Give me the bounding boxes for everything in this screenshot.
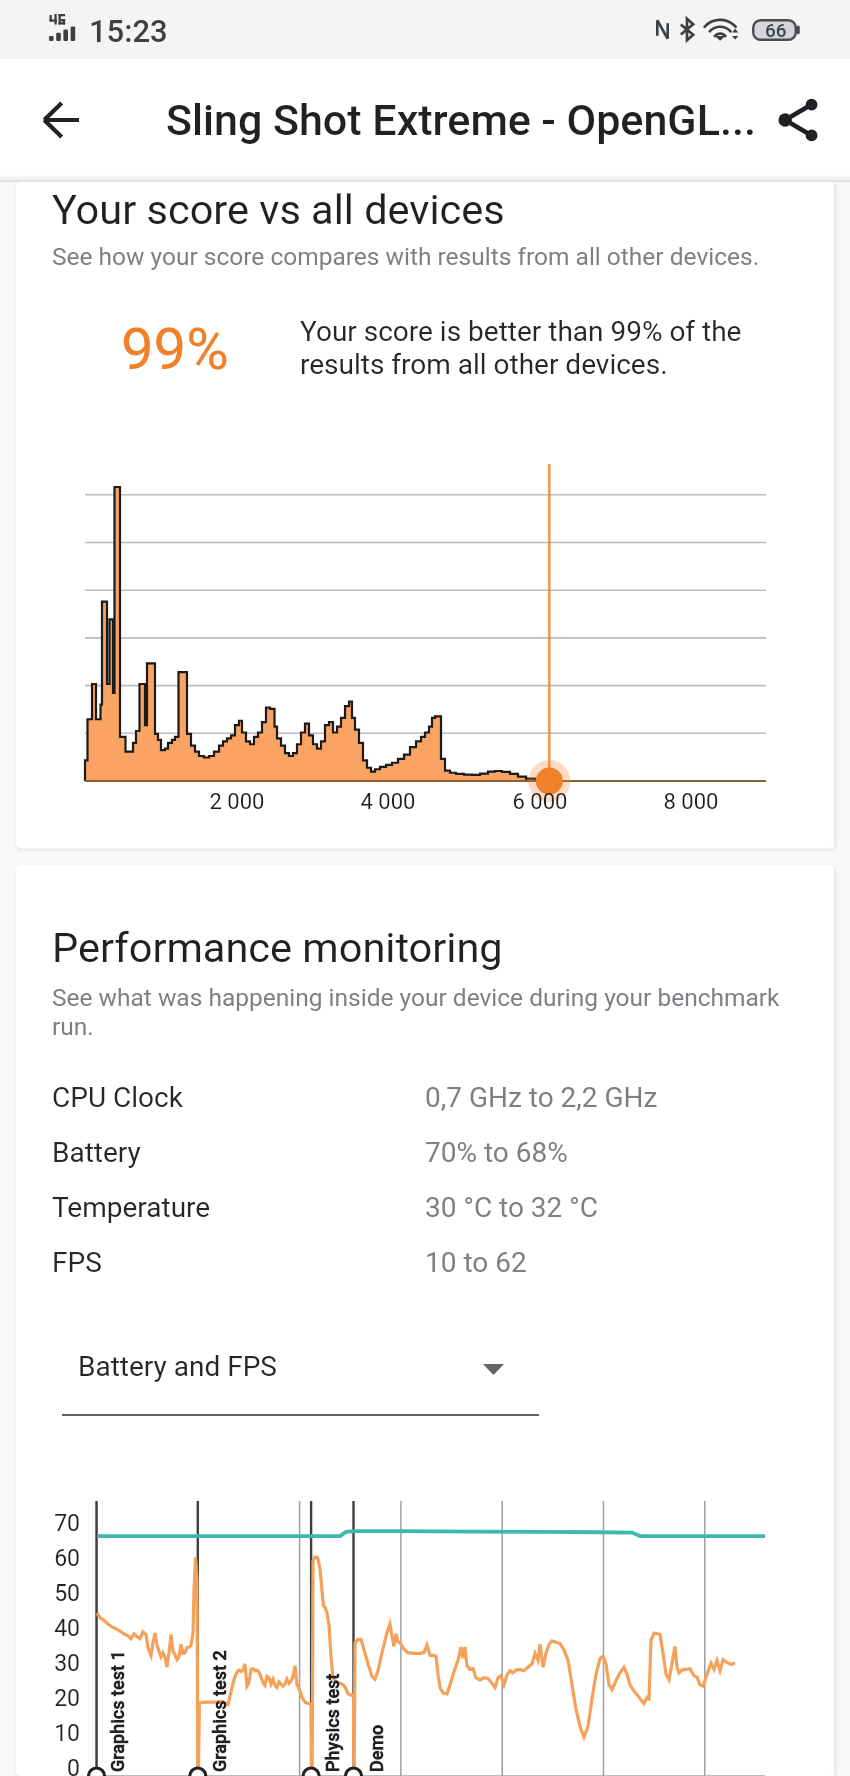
- staticText: 66: [765, 19, 787, 41]
- staticText: Sling Shot Extreme - OpenGL...: [166, 95, 756, 145]
- staticText: Graphics test 2: [209, 1650, 230, 1772]
- staticText: 70% to 68%: [425, 1136, 568, 1169]
- staticText: Graphics test 1: [107, 1650, 128, 1772]
- staticText: 70: [16, 1510, 80, 1537]
- staticText: 10: [16, 1720, 80, 1747]
- staticText: 4 000: [338, 789, 438, 815]
- staticText: Your score vs all devices: [52, 185, 505, 234]
- button[interactable]: Battery and FPS: [62, 1344, 539, 1418]
- staticText: Temperature: [52, 1191, 425, 1224]
- staticText: Demo: [366, 1724, 387, 1772]
- button[interactable]: Share: [758, 77, 844, 163]
- staticText: 60: [16, 1545, 80, 1572]
- staticText: 30 °C to 32 °C: [425, 1191, 598, 1224]
- staticText: 2 000: [187, 789, 287, 815]
- staticText: Physics test: [322, 1673, 343, 1772]
- staticText: Battery and FPS: [78, 1350, 277, 1383]
- staticText: 40: [16, 1615, 80, 1642]
- staticText: 0,7 GHz to 2,2 GHz: [425, 1081, 658, 1114]
- staticText: 99%: [121, 315, 229, 383]
- staticText: 15:23: [89, 13, 168, 49]
- staticText: FPS: [52, 1246, 425, 1279]
- staticText: 8 000: [641, 789, 741, 815]
- staticText: 30: [16, 1650, 80, 1677]
- staticText: See how your score compares with results…: [52, 242, 760, 271]
- staticText: Performance monitoring: [52, 923, 503, 972]
- staticText: Battery: [52, 1136, 425, 1169]
- staticText: 10 to 62: [425, 1246, 527, 1279]
- staticText: 0: [16, 1755, 80, 1776]
- button[interactable]: Back: [18, 77, 104, 163]
- staticText: CPU Clock: [52, 1081, 425, 1114]
- staticText: See what was happening inside your devic…: [52, 983, 797, 1041]
- staticText: 6 000: [490, 789, 590, 815]
- staticText: 20: [16, 1685, 80, 1712]
- staticText: Your score is better than 99% of the res…: [300, 315, 750, 381]
- staticText: 50: [16, 1580, 80, 1607]
